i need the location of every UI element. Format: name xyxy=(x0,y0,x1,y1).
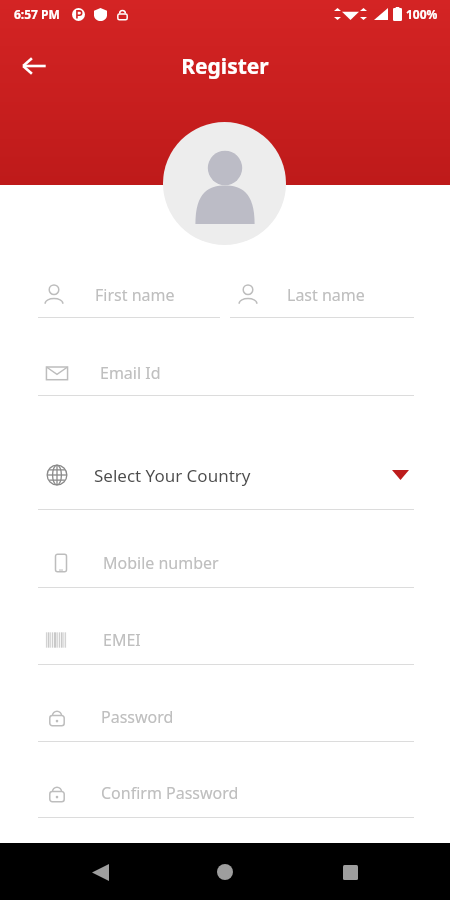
button[interactable]: Select Your Country xyxy=(38,440,414,510)
button[interactable]: Last name xyxy=(230,272,414,318)
button[interactable]: Home xyxy=(203,850,247,894)
staticText: Password xyxy=(101,706,174,728)
staticText: Select Your Country xyxy=(94,464,251,487)
staticText: First name xyxy=(95,284,175,306)
button[interactable]: Confirm Password xyxy=(38,768,414,818)
button[interactable]: Back xyxy=(78,850,122,894)
button[interactable]: Recent apps xyxy=(328,850,372,894)
staticText: 6:57 PM xyxy=(14,6,60,22)
button[interactable]: First name xyxy=(38,272,220,318)
staticText: Register xyxy=(0,52,450,81)
button[interactable]: EMEI xyxy=(38,615,414,665)
button[interactable]: Mobile number xyxy=(38,538,414,588)
staticText: Mobile number xyxy=(103,552,219,574)
staticText: Last name xyxy=(287,284,365,306)
staticText: EMEI xyxy=(103,629,141,651)
button[interactable]: Email Id xyxy=(38,349,414,396)
staticText: Email Id xyxy=(100,362,161,384)
staticText: 100% xyxy=(406,6,438,22)
staticText: Confirm Password xyxy=(101,782,239,804)
button[interactable]: Password xyxy=(38,692,414,742)
button[interactable]: Profile photo xyxy=(163,122,286,245)
button[interactable]: Back xyxy=(10,42,58,90)
